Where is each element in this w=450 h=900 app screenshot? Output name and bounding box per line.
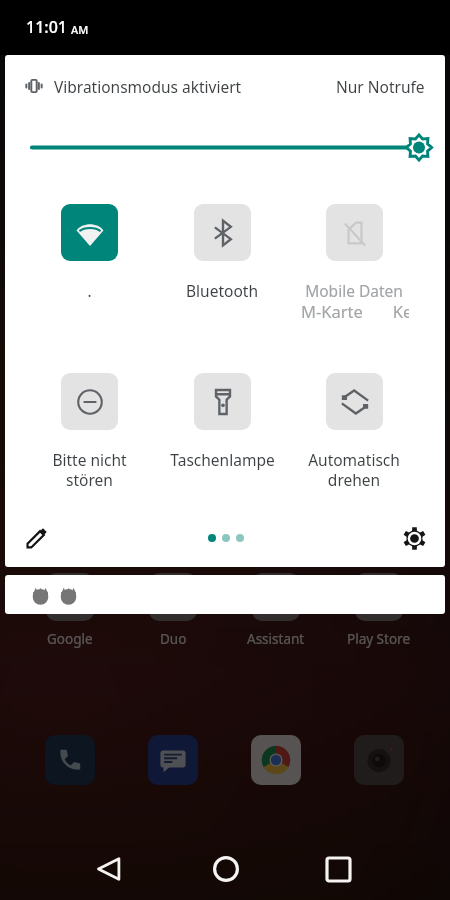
button[interactable]: Automatisch drehen xyxy=(288,373,420,491)
staticText: Mobile Daten xyxy=(305,280,403,301)
button[interactable]: Mobile Daten xyxy=(288,204,420,323)
staticText: Duo xyxy=(160,630,187,648)
button[interactable]: Taschenlampe xyxy=(156,373,288,470)
staticText: . xyxy=(87,280,92,301)
staticText: Bluetooth xyxy=(186,280,258,301)
staticText: Nur Notrufe xyxy=(336,76,425,97)
button[interactable]: Edit tiles xyxy=(15,516,59,560)
staticText: Bitte nicht stören xyxy=(52,449,127,491)
button[interactable]: . xyxy=(23,204,156,301)
staticText: Vibrationsmodus aktiviert xyxy=(54,76,242,97)
button[interactable]: Back xyxy=(85,845,133,893)
staticText: Μ-Karte Keine xyxy=(301,301,409,322)
button[interactable]: Home xyxy=(202,845,250,893)
staticText: Play Store xyxy=(347,630,410,648)
staticText: Assistant xyxy=(247,630,305,648)
staticText: 11:01 xyxy=(26,16,67,38)
button[interactable]: Bluetooth xyxy=(156,204,288,301)
staticText: AM xyxy=(71,22,89,37)
staticText: Google xyxy=(47,630,93,648)
staticText: Automatisch drehen xyxy=(308,449,400,491)
button[interactable]: Settings xyxy=(392,516,436,560)
staticText: Taschenlampe xyxy=(170,449,275,470)
button[interactable]: Recents xyxy=(314,845,362,893)
button[interactable]: Bitte nicht stören xyxy=(23,373,156,491)
